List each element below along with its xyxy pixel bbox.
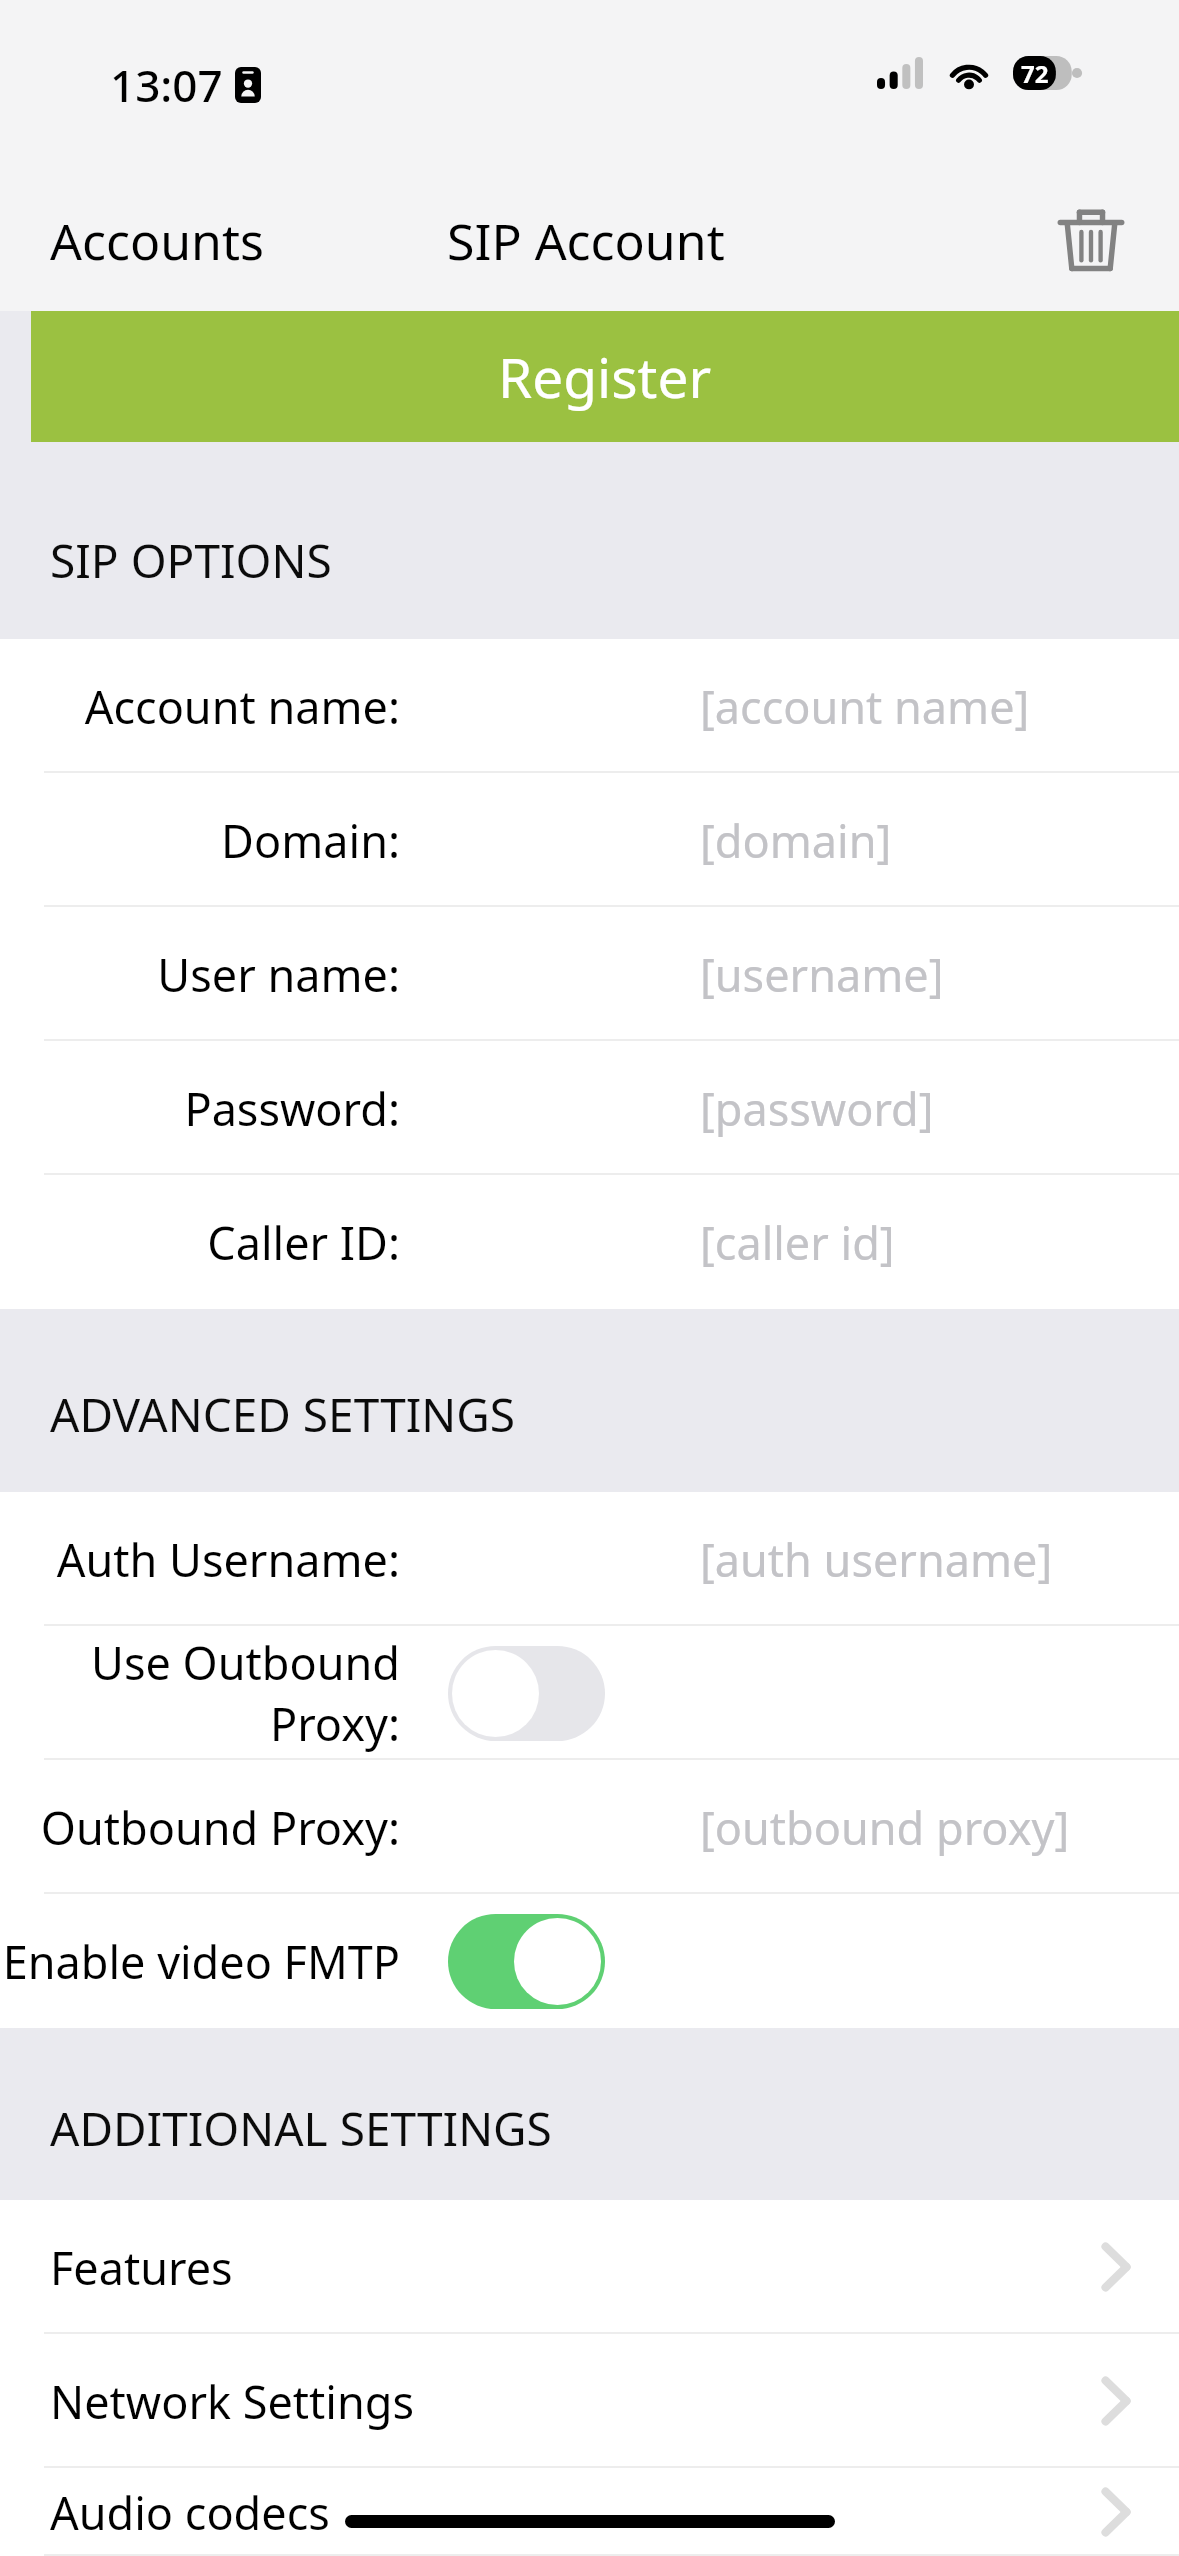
button[interactable]: Use Outbound Proxy:	[0, 1626, 1179, 1760]
staticText: ADVANCED SETTINGS	[50, 1383, 516, 1446]
staticText: [caller id]	[700, 1212, 895, 1273]
staticText: Enable video FMTP	[0, 1931, 400, 1992]
button[interactable]: Register	[31, 311, 1179, 442]
staticText: [account name]	[700, 676, 1030, 737]
button[interactable]: Accounts	[0, 189, 288, 293]
staticText: 72	[1021, 57, 1049, 90]
button[interactable]: Delete	[1043, 193, 1139, 289]
staticText: User name:	[0, 944, 400, 1005]
button[interactable]: Caller ID:	[0, 1175, 1179, 1309]
button[interactable]: Account name:	[0, 639, 1179, 773]
button[interactable]: Network Settings	[0, 2334, 1179, 2468]
button[interactable]: Enable video FMTP	[0, 1894, 1179, 2028]
button[interactable]: Use Outbound Proxy:	[448, 1646, 605, 1741]
staticText: Outbound Proxy:	[0, 1797, 400, 1858]
button[interactable]: Domain:	[0, 773, 1179, 907]
staticText: Auth Username:	[0, 1529, 400, 1590]
button[interactable]: Outbound Proxy:	[0, 1760, 1179, 1894]
staticText: Account name:	[0, 676, 400, 737]
staticText: Caller ID:	[0, 1212, 400, 1273]
staticText: [auth username]	[700, 1529, 1053, 1590]
staticText: ADDITIONAL SETTINGS	[50, 2097, 552, 2160]
button[interactable]: Enable video FMTP	[448, 1914, 605, 2009]
staticText: 13:07	[110, 55, 223, 115]
button[interactable]: Auth Username:	[0, 1492, 1179, 1626]
staticText: [username]	[700, 944, 944, 1005]
button[interactable]: Audio codecs	[0, 2468, 1179, 2556]
staticText: Features	[50, 2237, 233, 2298]
staticText: [password]	[700, 1078, 934, 1139]
staticText: Network Settings	[50, 2371, 414, 2432]
button[interactable]: User name:	[0, 907, 1179, 1041]
staticText: Password:	[0, 1078, 400, 1139]
button[interactable]: Password:	[0, 1041, 1179, 1175]
staticText: Register	[498, 339, 712, 414]
staticText: Domain:	[0, 810, 400, 871]
staticText: Audio codecs	[50, 2482, 330, 2543]
staticText: Accounts	[50, 207, 264, 275]
staticText: SIP OPTIONS	[50, 529, 332, 592]
staticText: Use Outbound Proxy:	[0, 1632, 400, 1754]
staticText: SIP Account	[447, 207, 725, 275]
button[interactable]: Features	[0, 2200, 1179, 2334]
staticText: [domain]	[700, 810, 892, 871]
staticText: [outbound proxy]	[700, 1797, 1070, 1858]
